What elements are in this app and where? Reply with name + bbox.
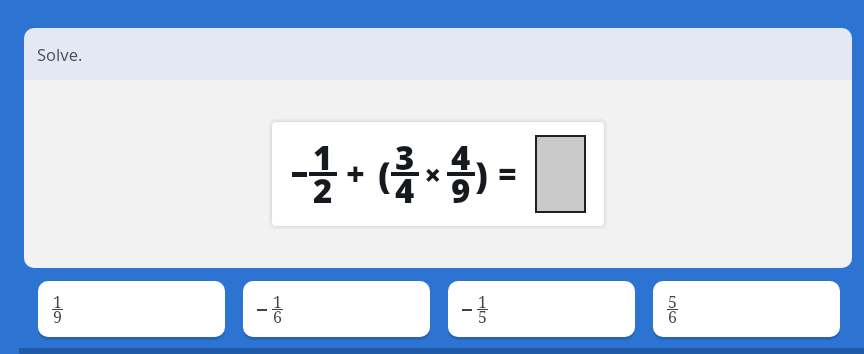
- staticText: 4: [395, 168, 415, 213]
- button[interactable]: 1: [38, 281, 225, 337]
- staticText: 1: [273, 291, 282, 313]
- staticText: 6: [273, 306, 282, 328]
- staticText: 4: [451, 135, 471, 180]
- staticText: ×: [424, 154, 442, 195]
- staticText: (: [378, 150, 391, 199]
- staticText: +: [346, 152, 365, 196]
- button[interactable]: 1: [243, 281, 430, 337]
- staticText: =: [498, 152, 517, 196]
- staticText: 1: [313, 135, 333, 180]
- staticText: Solve.: [37, 43, 83, 65]
- staticText: 2: [313, 168, 333, 213]
- staticText: 5: [478, 306, 487, 328]
- staticText: 1: [53, 291, 62, 313]
- staticText: 3: [395, 135, 415, 180]
- staticText: ): [475, 150, 488, 199]
- button[interactable]: 1: [271, 121, 605, 227]
- button[interactable]: 5: [653, 281, 840, 337]
- staticText: 9: [451, 168, 471, 213]
- staticText: 6: [668, 306, 677, 328]
- staticText: 5: [668, 291, 677, 313]
- staticText: 9: [53, 306, 62, 328]
- staticText: 1: [478, 291, 487, 313]
- button[interactable]: 1: [448, 281, 635, 337]
